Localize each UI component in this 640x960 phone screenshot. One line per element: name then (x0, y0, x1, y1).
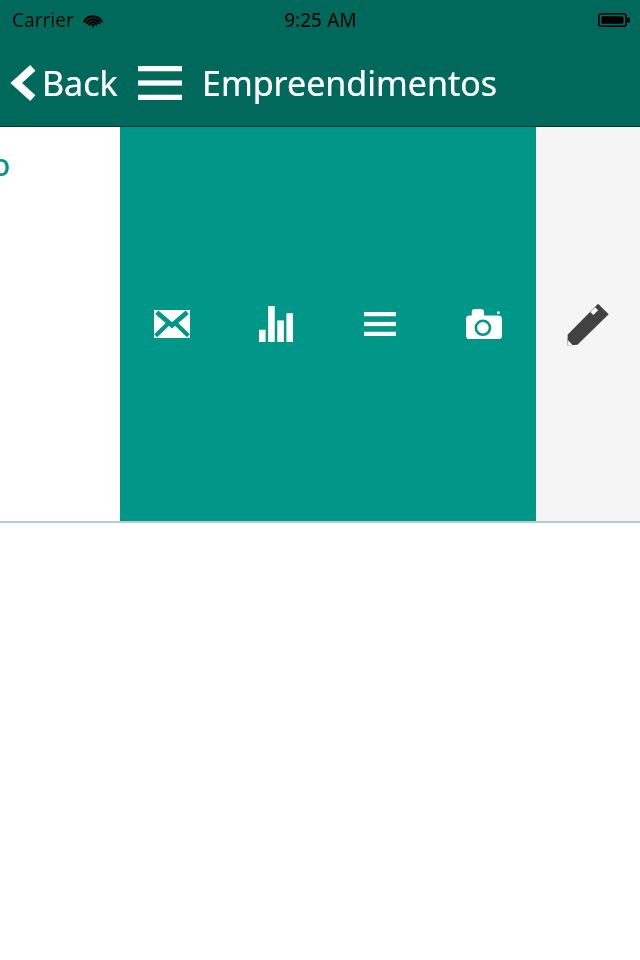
button[interactable]: Camera (432, 127, 536, 521)
button[interactable]: Menu (132, 56, 188, 110)
staticText: Back (42, 60, 118, 106)
button[interactable]: Edit (536, 127, 640, 521)
button[interactable]: List (328, 127, 432, 521)
staticText: Empreendimentos (202, 60, 498, 106)
staticText: Carrier (12, 7, 74, 33)
button[interactable]: Email (120, 127, 224, 521)
button[interactable]: Statistics (224, 127, 328, 521)
staticText: 9:25 AM (284, 7, 357, 33)
button[interactable]: Back (0, 52, 122, 114)
staticText: o (0, 144, 11, 185)
